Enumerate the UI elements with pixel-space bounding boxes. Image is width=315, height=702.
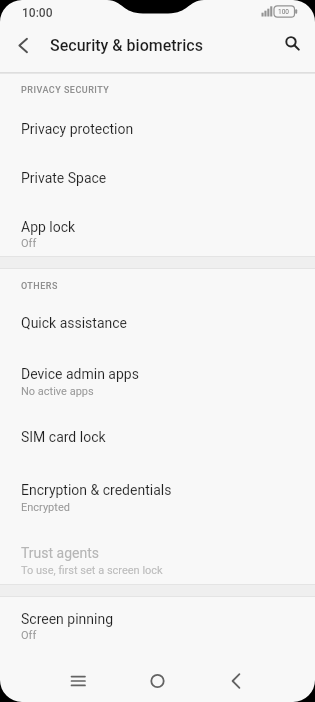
staticText: Privacy protection: [21, 121, 134, 137]
button[interactable]: [48, 660, 108, 702]
button[interactable]: SIM card lock: [0, 413, 315, 462]
staticText: Screen pinning: [21, 611, 114, 627]
button[interactable]: App lock: [0, 202, 315, 256]
staticText: 100: [278, 8, 289, 16]
staticText: Encrypted: [21, 501, 70, 514]
button[interactable]: [127, 660, 187, 702]
button[interactable]: Private Space: [0, 153, 315, 202]
staticText: No active apps: [21, 385, 94, 398]
staticText: Security & biometrics: [50, 36, 203, 55]
staticText: PRIVACY SECURITY: [21, 85, 110, 96]
button[interactable]: Quick assistance: [0, 298, 315, 347]
staticText: Device admin apps: [21, 366, 139, 382]
button[interactable]: Device admin apps: [0, 349, 315, 413]
button[interactable]: Privacy protection: [0, 104, 315, 153]
staticText: Off: [21, 629, 37, 642]
button[interactable]: [6, 32, 34, 60]
staticText: Encryption & credentials: [21, 482, 172, 498]
button[interactable]: [277, 28, 307, 58]
button[interactable]: Encryption & credentials: [0, 464, 315, 528]
staticText: Trust agents: [21, 545, 100, 561]
staticText: Off: [21, 237, 37, 250]
staticText: Private Space: [21, 170, 107, 186]
staticText: 10:00: [22, 6, 53, 20]
staticText: Quick assistance: [21, 315, 128, 331]
staticText: SIM card lock: [21, 429, 106, 445]
staticText: App lock: [21, 219, 76, 235]
button[interactable]: Screen pinning: [0, 597, 315, 651]
staticText: To use, first set a screen lock: [21, 564, 163, 577]
button[interactable]: [205, 660, 265, 702]
button[interactable]: Trust agents: [0, 528, 315, 584]
staticText: OTHERS: [21, 281, 58, 292]
